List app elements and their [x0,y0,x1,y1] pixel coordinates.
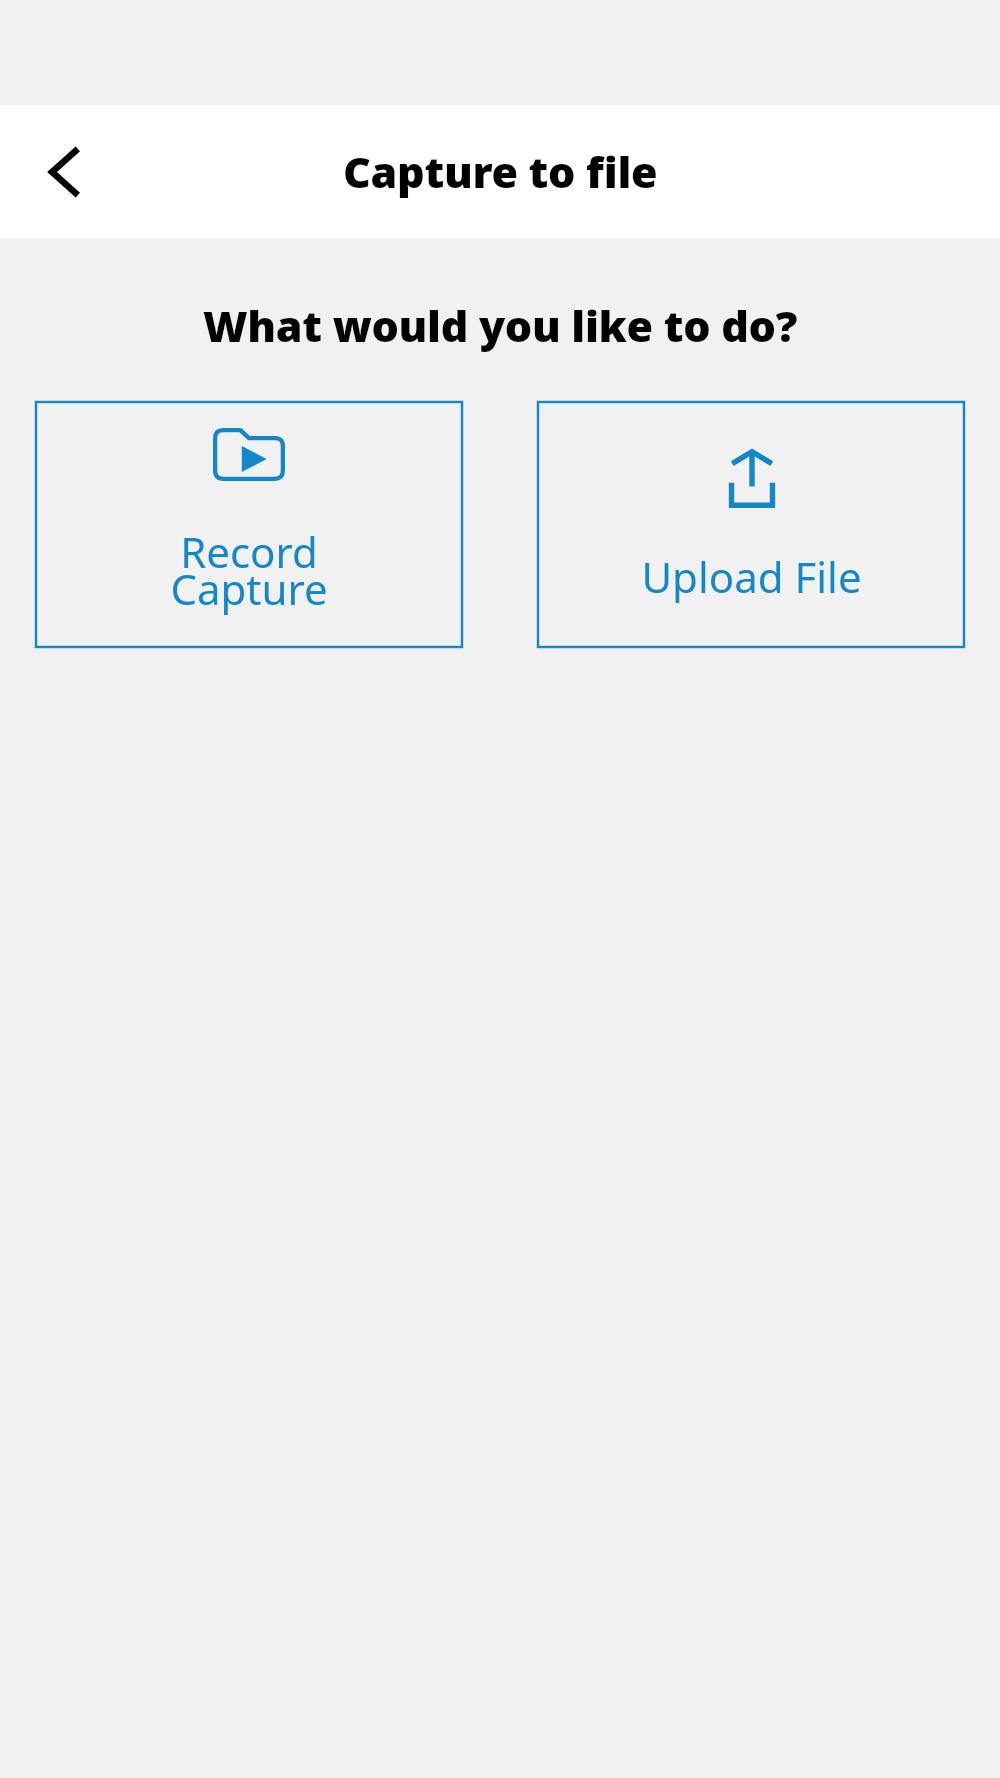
staticText: What would you like to do? [0,296,1000,355]
button[interactable]: Back [20,128,108,216]
staticText: Record Capture [170,523,328,617]
staticText: Capture to file [343,142,658,201]
button[interactable]: Upload File [538,402,964,647]
staticText: Upload File [641,548,862,605]
button[interactable]: Record Capture [36,402,462,647]
